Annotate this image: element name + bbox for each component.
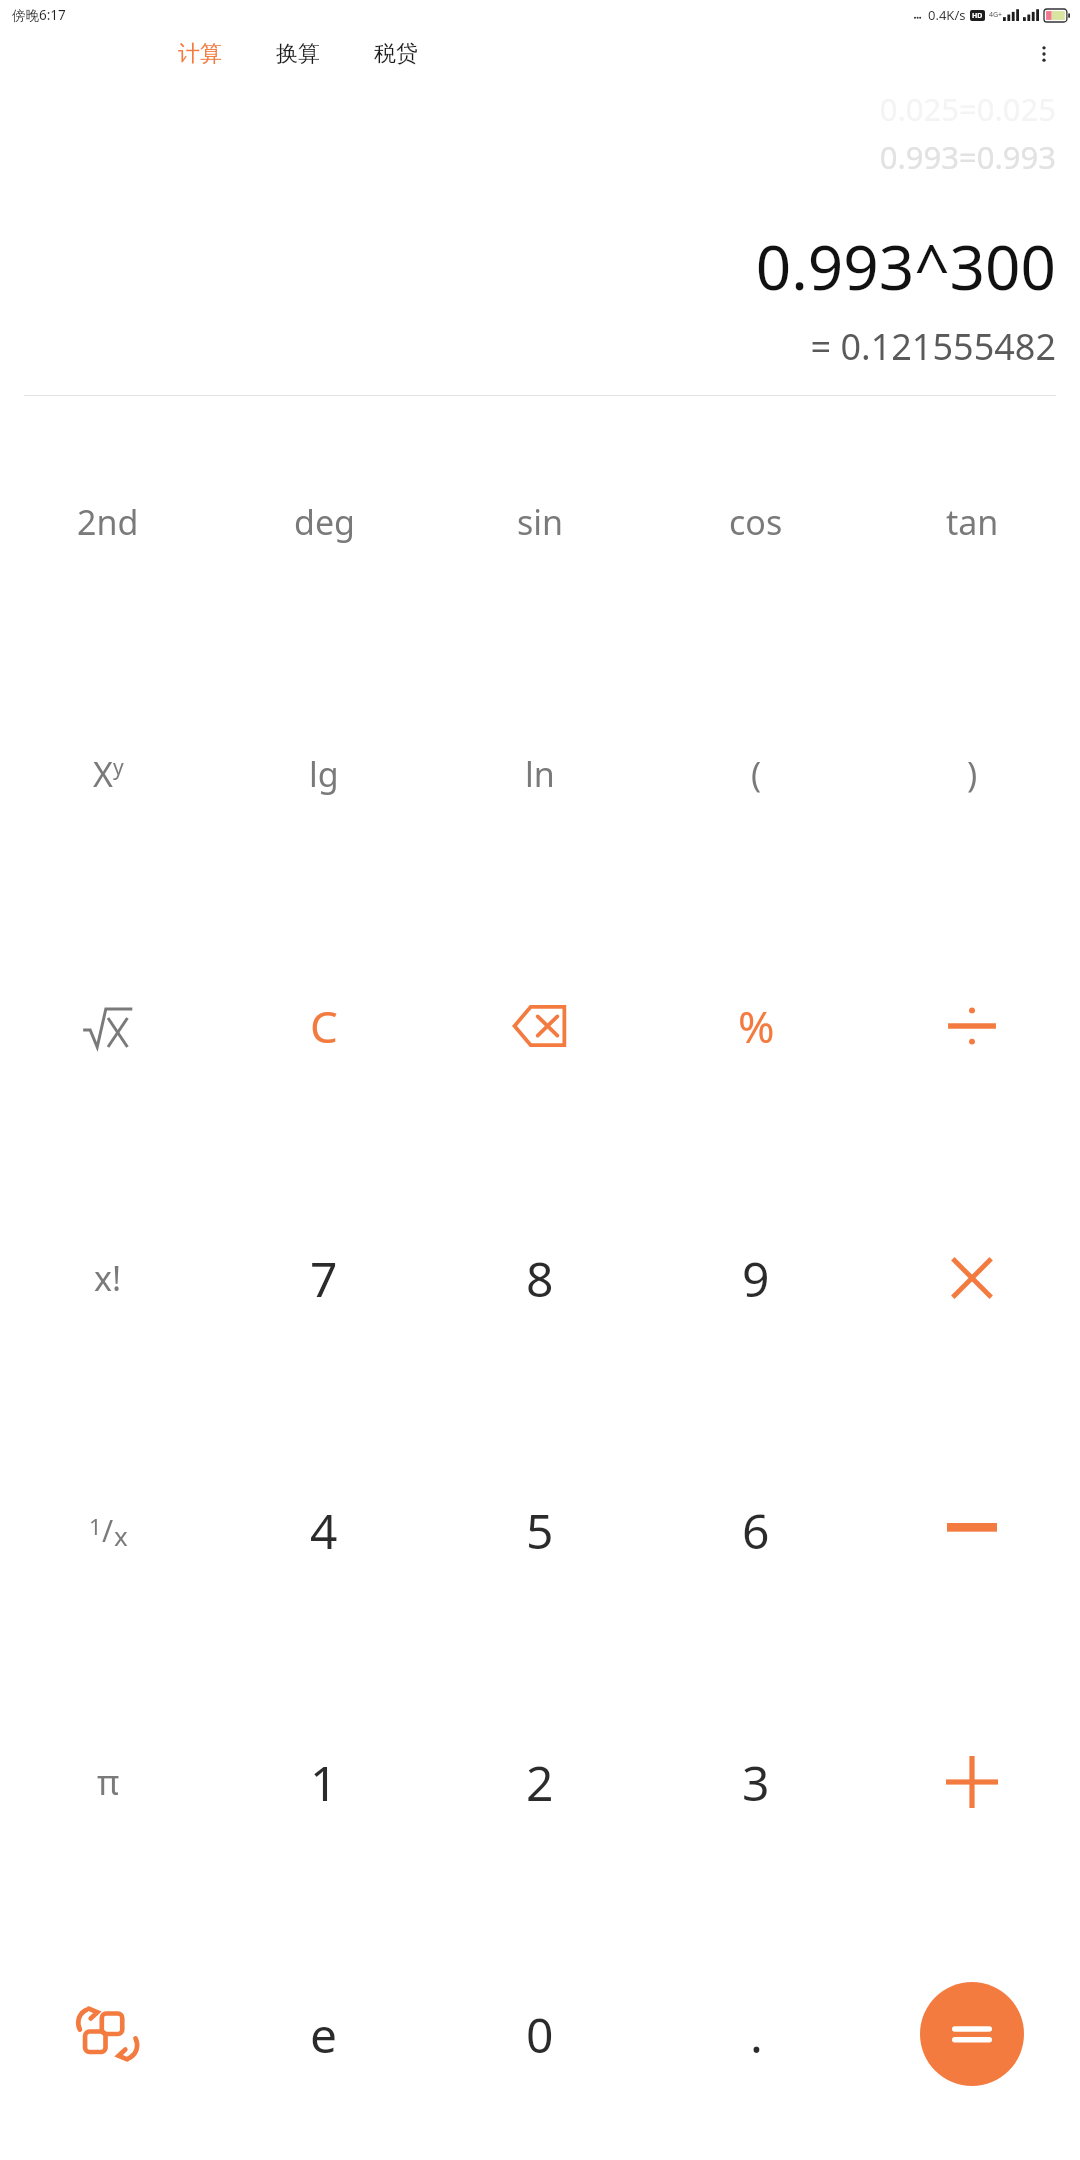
button[interactable]: 4 bbox=[216, 1404, 432, 1656]
staticText: lg bbox=[309, 751, 339, 797]
button[interactable]: 2nd bbox=[0, 396, 216, 648]
button[interactable]: . bbox=[648, 1908, 864, 2160]
button[interactable]: 1 bbox=[0, 1404, 216, 1656]
staticText: 3 bbox=[742, 1750, 770, 1815]
staticText: 5 bbox=[526, 1498, 554, 1563]
staticText: 0 bbox=[526, 2002, 554, 2067]
staticText: sin bbox=[517, 499, 564, 545]
staticText: 1 bbox=[310, 1750, 338, 1815]
staticText: tan bbox=[946, 499, 999, 545]
button[interactable]: More options bbox=[1022, 32, 1066, 76]
staticText: 4G+ bbox=[989, 10, 1003, 20]
staticText: 傍晚6:17 bbox=[12, 6, 66, 24]
button[interactable]: sin bbox=[432, 396, 648, 648]
button[interactable]: 计算 bbox=[170, 34, 230, 74]
button[interactable]: 税贷 bbox=[366, 34, 426, 74]
button[interactable]: 7 bbox=[216, 1152, 432, 1404]
button[interactable]: C bbox=[216, 900, 432, 1152]
button[interactable]: tan bbox=[864, 396, 1080, 648]
button[interactable]: e bbox=[216, 1908, 432, 2160]
button[interactable]: cos bbox=[648, 396, 864, 648]
staticText: 6 bbox=[742, 1498, 770, 1563]
button[interactable]: 9 bbox=[648, 1152, 864, 1404]
button[interactable]: Backspace bbox=[432, 900, 648, 1152]
button[interactable]: Convert units bbox=[0, 1908, 216, 2160]
staticText: HD bbox=[972, 11, 983, 21]
staticText: ln bbox=[525, 751, 555, 797]
staticText: cos bbox=[729, 499, 783, 545]
staticText: ) bbox=[967, 751, 978, 797]
staticText: π bbox=[97, 1759, 120, 1805]
staticText: 9 bbox=[742, 1246, 770, 1311]
staticText: 4 bbox=[310, 1498, 338, 1563]
button[interactable]: 8 bbox=[432, 1152, 648, 1404]
staticText: x bbox=[114, 1518, 128, 1553]
staticText: 2nd bbox=[77, 499, 139, 545]
staticText: 8 bbox=[526, 1246, 554, 1311]
staticText: C bbox=[310, 996, 338, 1056]
button[interactable]: 6 bbox=[648, 1404, 864, 1656]
staticText: = 0.121555482 bbox=[810, 322, 1056, 371]
staticText: 0.025=0.025 bbox=[879, 88, 1056, 130]
staticText: 税贷 bbox=[374, 40, 418, 68]
button[interactable]: π bbox=[0, 1656, 216, 1908]
button[interactable]: ln bbox=[432, 648, 648, 900]
staticText: / bbox=[102, 1510, 114, 1551]
staticText: e bbox=[310, 2002, 338, 2067]
staticText: ( bbox=[751, 751, 762, 797]
staticText: 换算 bbox=[276, 40, 320, 68]
button[interactable]: x! bbox=[0, 1152, 216, 1404]
staticText: 0.4K/s bbox=[928, 6, 966, 24]
button[interactable]: 0 bbox=[432, 1908, 648, 2160]
button[interactable]: Minus bbox=[864, 1404, 1080, 1656]
button[interactable]: Equals bbox=[864, 1908, 1080, 2160]
staticText: . bbox=[750, 2002, 763, 2067]
button[interactable]: 3 bbox=[648, 1656, 864, 1908]
button[interactable]: Plus bbox=[864, 1656, 1080, 1908]
button[interactable]: % bbox=[648, 900, 864, 1152]
button[interactable]: Divide bbox=[864, 900, 1080, 1152]
staticText: x! bbox=[94, 1255, 122, 1301]
button[interactable]: 2 bbox=[432, 1656, 648, 1908]
staticText: 0.993^300 bbox=[755, 224, 1056, 308]
button[interactable]: ) bbox=[864, 648, 1080, 900]
staticText: 7 bbox=[310, 1246, 338, 1311]
staticText: 2 bbox=[526, 1750, 554, 1815]
button[interactable]: 换算 bbox=[268, 34, 328, 74]
staticText: y bbox=[113, 753, 124, 782]
staticText: deg bbox=[294, 499, 355, 545]
button[interactable]: lg bbox=[216, 648, 432, 900]
button[interactable] bbox=[0, 900, 216, 1152]
button[interactable]: ( bbox=[648, 648, 864, 900]
button[interactable]: 5 bbox=[432, 1404, 648, 1656]
staticText: 0.993=0.993 bbox=[879, 136, 1056, 178]
button[interactable]: 1 bbox=[216, 1656, 432, 1908]
staticText: X bbox=[93, 751, 113, 797]
staticText: 计算 bbox=[178, 40, 222, 68]
button[interactable]: deg bbox=[216, 396, 432, 648]
button[interactable]: Multiply bbox=[864, 1152, 1080, 1404]
staticText: % bbox=[738, 996, 775, 1056]
staticText: 1 bbox=[89, 1511, 102, 1541]
button[interactable]: X bbox=[0, 648, 216, 900]
